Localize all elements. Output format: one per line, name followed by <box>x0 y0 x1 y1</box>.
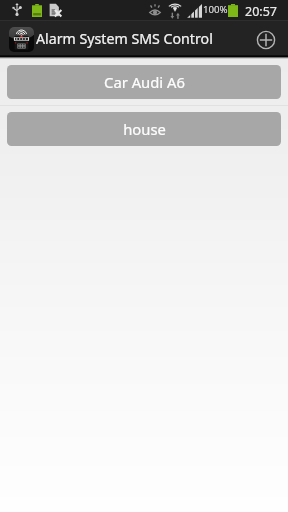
staticText: 100% <box>203 3 228 16</box>
staticText: house <box>123 119 166 139</box>
button[interactable]: Add new device <box>248 21 284 58</box>
button[interactable]: Car Audi A6 <box>7 65 281 99</box>
staticText: Alarm System SMS Control <box>36 29 213 48</box>
button[interactable]: house <box>7 112 281 146</box>
staticText: Car Audi A6 <box>104 72 185 92</box>
staticText: 20:57 <box>245 3 277 20</box>
